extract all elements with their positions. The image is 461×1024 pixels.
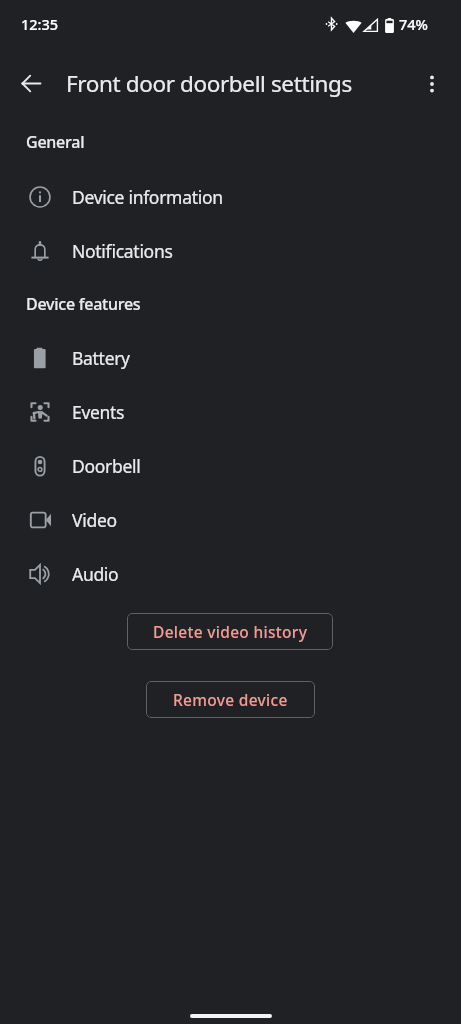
staticText: Front door doorbell settings xyxy=(66,68,352,99)
button[interactable]: Navigate up xyxy=(10,62,53,105)
staticText: Audio xyxy=(72,562,119,586)
staticText: Doorbell xyxy=(72,454,141,478)
staticText: Device information xyxy=(72,185,223,209)
staticText: Battery xyxy=(72,346,130,370)
staticText: 12:35 xyxy=(21,14,59,34)
button[interactable]: Notifications xyxy=(0,224,461,278)
button[interactable]: Doorbell xyxy=(0,439,461,493)
button[interactable]: Battery xyxy=(0,331,461,385)
staticText: Device features xyxy=(26,293,141,315)
staticText: General xyxy=(26,131,85,153)
button[interactable]: Audio xyxy=(0,547,461,601)
staticText: Events xyxy=(72,400,125,424)
button[interactable]: Remove device xyxy=(146,681,315,718)
button[interactable]: More options xyxy=(411,63,453,105)
staticText: 74% xyxy=(399,14,428,34)
staticText: Notifications xyxy=(72,239,173,263)
button[interactable]: Device information xyxy=(0,170,461,224)
staticText: Remove device xyxy=(173,689,288,710)
staticText: Delete video history xyxy=(153,621,308,642)
button[interactable]: Video xyxy=(0,493,461,547)
button[interactable]: Events xyxy=(0,385,461,439)
staticText: Video xyxy=(72,508,117,532)
button[interactable]: Delete video history xyxy=(127,613,333,650)
